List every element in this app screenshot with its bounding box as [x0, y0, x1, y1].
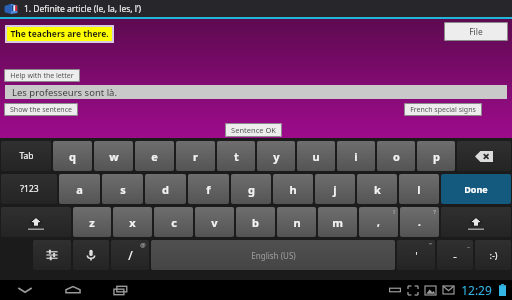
button[interactable]: Sentence OK	[225, 123, 282, 137]
staticText: Help with the letter	[10, 71, 74, 81]
button[interactable]: :-)	[475, 240, 511, 270]
button[interactable]: Home	[60, 281, 86, 299]
button[interactable]: Tab	[1, 141, 51, 171]
staticText: -	[453, 248, 457, 263]
staticText: ?	[433, 208, 436, 216]
staticText: d	[162, 182, 169, 197]
button[interactable]: -	[437, 240, 473, 270]
button[interactable]: c	[154, 207, 193, 237]
staticText: g	[248, 182, 255, 197]
button[interactable]: /	[111, 240, 149, 270]
staticText: w	[109, 149, 119, 164]
staticText: Tab	[19, 150, 34, 162]
button[interactable]: Input settings	[33, 240, 71, 270]
staticText: :-)	[489, 249, 498, 261]
staticText: ?123	[20, 183, 39, 195]
staticText: v	[211, 215, 218, 230]
button[interactable]: d	[145, 174, 186, 204]
button[interactable]: Backspace	[457, 141, 511, 171]
staticText: .	[418, 215, 421, 229]
button[interactable]: Voice input	[73, 240, 109, 270]
button[interactable]: k	[357, 174, 397, 204]
staticText: "	[429, 241, 432, 249]
button[interactable]: .	[400, 207, 439, 237]
button[interactable]: w	[94, 141, 133, 171]
staticText: Done	[464, 183, 488, 195]
button[interactable]: i	[337, 141, 375, 171]
button[interactable]: x	[113, 207, 152, 237]
button[interactable]: Show the sentence	[4, 103, 78, 116]
button[interactable]: '	[397, 240, 435, 270]
button[interactable]: q	[53, 141, 92, 171]
staticText: o	[393, 149, 400, 164]
button[interactable]: e	[135, 141, 174, 171]
button[interactable]: French special signs	[404, 103, 482, 116]
button[interactable]: Les professeurs sont là.	[5, 85, 507, 99]
staticText: 12:29	[461, 282, 492, 298]
staticText: u	[312, 149, 320, 164]
staticText: File	[469, 26, 483, 38]
button[interactable]: g	[231, 174, 271, 204]
staticText: r	[193, 149, 198, 164]
button[interactable]: English (US)	[151, 240, 395, 270]
button[interactable]: n	[277, 207, 316, 237]
button[interactable]: o	[377, 141, 415, 171]
button[interactable]: f	[188, 174, 229, 204]
staticText: x	[129, 215, 136, 230]
staticText: q	[69, 149, 76, 164]
button[interactable]: Shift	[1, 207, 71, 237]
button[interactable]: b	[236, 207, 275, 237]
staticText: The teachers are there.	[10, 28, 109, 40]
staticText: y	[273, 149, 280, 164]
button[interactable]: l	[399, 174, 439, 204]
staticText: n	[293, 215, 301, 230]
button[interactable]: ?123	[1, 174, 57, 204]
button[interactable]: h	[273, 174, 313, 204]
button[interactable]: y	[257, 141, 295, 171]
button[interactable]: z	[73, 207, 111, 237]
button[interactable]: p	[417, 141, 455, 171]
staticText: Les professeurs sont là.	[12, 86, 117, 99]
button[interactable]: Back	[12, 281, 38, 299]
button[interactable]: The teachers are there.	[7, 27, 112, 41]
button[interactable]: Done	[441, 174, 511, 204]
staticText: l	[417, 182, 421, 197]
button[interactable]: j	[315, 174, 355, 204]
button[interactable]: File	[444, 22, 508, 41]
staticText: z	[89, 215, 95, 230]
staticText: French special signs	[410, 105, 476, 115]
staticText: English (US)	[251, 250, 296, 261]
staticText: !	[393, 208, 395, 216]
staticText: Show the sentence	[10, 105, 72, 115]
staticText: h	[289, 182, 297, 197]
staticText: ,	[377, 215, 380, 229]
staticText: _	[467, 241, 470, 249]
button[interactable]: Shift	[441, 207, 511, 237]
button[interactable]: Help with the letter	[4, 69, 80, 82]
staticText: @	[140, 241, 146, 249]
staticText: a	[76, 182, 83, 197]
staticText: e	[151, 149, 158, 164]
button[interactable]: Recent apps	[108, 281, 134, 299]
staticText: m	[332, 215, 343, 230]
button[interactable]: ,	[359, 207, 398, 237]
staticText: 1. Definite article (le, la, les, l’)	[24, 3, 142, 15]
staticText: Sentence OK	[231, 125, 276, 135]
button[interactable]: u	[297, 141, 335, 171]
staticText: k	[374, 182, 381, 197]
staticText: p	[433, 149, 440, 164]
staticText: j	[333, 182, 337, 197]
staticText: '	[415, 248, 418, 263]
staticText: s	[120, 182, 126, 197]
button[interactable]: a	[59, 174, 100, 204]
button[interactable]: t	[217, 141, 255, 171]
staticText: /	[128, 247, 133, 263]
staticText: f	[206, 182, 211, 197]
button[interactable]: s	[102, 174, 143, 204]
staticText: i	[354, 149, 358, 164]
staticText: b	[252, 215, 259, 230]
button[interactable]: r	[176, 141, 215, 171]
staticText: t	[234, 149, 239, 164]
button[interactable]: m	[318, 207, 357, 237]
button[interactable]: v	[195, 207, 234, 237]
